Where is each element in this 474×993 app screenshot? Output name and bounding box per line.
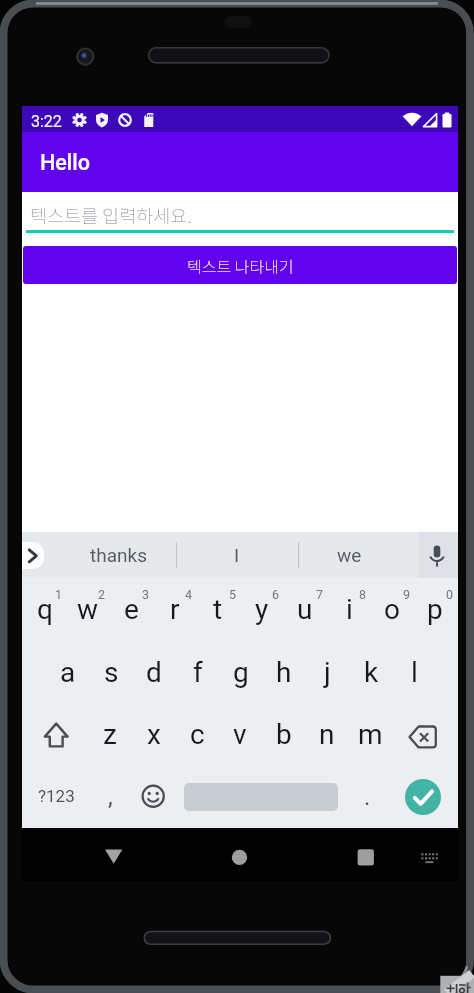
button[interactable]: y xyxy=(234,587,290,631)
button[interactable] xyxy=(418,532,458,578)
button[interactable] xyxy=(96,839,132,875)
button[interactable]: m xyxy=(342,712,398,756)
staticText: j xyxy=(324,656,331,689)
button[interactable]: thanks xyxy=(63,535,173,575)
staticText: c xyxy=(190,718,205,751)
staticText: 텍스트 나타내기 xyxy=(187,254,294,277)
staticText: b xyxy=(276,718,292,751)
button[interactable]: n xyxy=(299,712,355,756)
staticText: u xyxy=(297,593,313,626)
staticText: 4 xyxy=(185,587,193,602)
button[interactable]: b xyxy=(256,712,312,756)
staticText: I xyxy=(234,544,240,566)
button[interactable]: w xyxy=(60,587,116,631)
button[interactable]: I xyxy=(197,535,277,575)
button[interactable]: 텍스트 나타내기 xyxy=(23,246,457,284)
button[interactable]: u xyxy=(277,587,333,631)
staticText: 1 xyxy=(55,587,63,602)
button[interactable] xyxy=(405,779,441,815)
staticText: q xyxy=(37,593,53,626)
button[interactable]: o xyxy=(364,587,420,631)
button[interactable]: 1 xyxy=(49,584,69,604)
button[interactable]: i xyxy=(321,587,377,631)
staticText: Hello xyxy=(40,150,91,175)
button[interactable]: 8 xyxy=(353,584,373,604)
staticText: k xyxy=(364,656,379,689)
staticText: s xyxy=(104,656,119,689)
button[interactable]: g xyxy=(213,650,269,694)
staticText: 0 xyxy=(446,587,454,602)
staticText: i xyxy=(346,593,353,626)
staticText: 텍스트를 입력하세요. xyxy=(30,202,192,229)
button[interactable]: h xyxy=(256,650,312,694)
staticText: v xyxy=(233,718,247,751)
button[interactable]: s xyxy=(83,650,139,694)
button[interactable] xyxy=(411,839,447,875)
staticText: 3:22 xyxy=(31,112,62,128)
staticText: 8 xyxy=(359,587,367,602)
staticText: t xyxy=(213,593,223,626)
staticText: . xyxy=(364,783,371,811)
staticText: g xyxy=(233,656,249,689)
staticText: h xyxy=(276,656,292,689)
button[interactable]: q xyxy=(17,587,73,631)
button[interactable] xyxy=(348,839,384,875)
button[interactable]: d xyxy=(126,650,182,694)
staticText: ?123 xyxy=(38,786,75,806)
staticText: r xyxy=(170,593,180,626)
staticText: w xyxy=(77,593,99,626)
staticText: 5 xyxy=(229,587,237,602)
button[interactable]: t xyxy=(190,587,246,631)
button[interactable]: . xyxy=(339,775,395,819)
button[interactable]: 6 xyxy=(266,584,286,604)
staticText: d xyxy=(146,656,162,689)
staticText: l xyxy=(411,656,418,689)
button[interactable]: 5 xyxy=(223,584,243,604)
staticText: thanks xyxy=(90,544,147,566)
staticText: e xyxy=(124,593,139,626)
button[interactable]: r xyxy=(147,587,203,631)
staticText: m xyxy=(358,718,383,751)
button[interactable]: l xyxy=(386,650,442,694)
button[interactable]: , xyxy=(82,775,138,819)
staticText: , xyxy=(108,783,113,811)
staticText: 9 xyxy=(403,587,411,602)
button[interactable] xyxy=(22,542,44,569)
button[interactable]: 텍스트를 입력하세요. xyxy=(26,196,454,236)
staticText: 7 xyxy=(316,587,324,602)
button[interactable]: ?123 xyxy=(28,774,84,818)
button[interactable]: 3 xyxy=(136,584,156,604)
staticText: a xyxy=(60,656,76,689)
staticText: p xyxy=(427,593,443,626)
button[interactable] xyxy=(221,839,257,875)
button[interactable]: j xyxy=(299,650,355,694)
button[interactable]: a xyxy=(40,650,96,694)
staticText: 6 xyxy=(272,587,280,602)
button[interactable]: 9 xyxy=(397,584,417,604)
button[interactable]: 0 xyxy=(440,584,460,604)
staticText: 2 xyxy=(98,587,106,602)
button[interactable]: we xyxy=(309,535,389,575)
button[interactable]: p xyxy=(407,587,463,631)
staticText: y xyxy=(255,593,269,626)
button[interactable]: Hello xyxy=(22,132,458,192)
button[interactable]: e xyxy=(103,587,159,631)
staticText: n xyxy=(319,718,335,751)
button[interactable]: k xyxy=(343,650,399,694)
button[interactable]: z xyxy=(82,712,138,756)
staticText: we xyxy=(337,544,362,566)
staticText: z xyxy=(103,718,117,751)
button[interactable]: c xyxy=(169,712,225,756)
staticText: x xyxy=(147,718,161,751)
staticText: 3 xyxy=(142,587,150,602)
button[interactable]: 7 xyxy=(310,584,330,604)
button[interactable]: x xyxy=(126,712,182,756)
button[interactable]: 4 xyxy=(179,584,199,604)
button[interactable]: f xyxy=(170,650,226,694)
button[interactable]: v xyxy=(212,712,268,756)
button[interactable]: 2 xyxy=(92,584,112,604)
staticText: f xyxy=(193,656,203,689)
staticText: o xyxy=(384,593,400,626)
